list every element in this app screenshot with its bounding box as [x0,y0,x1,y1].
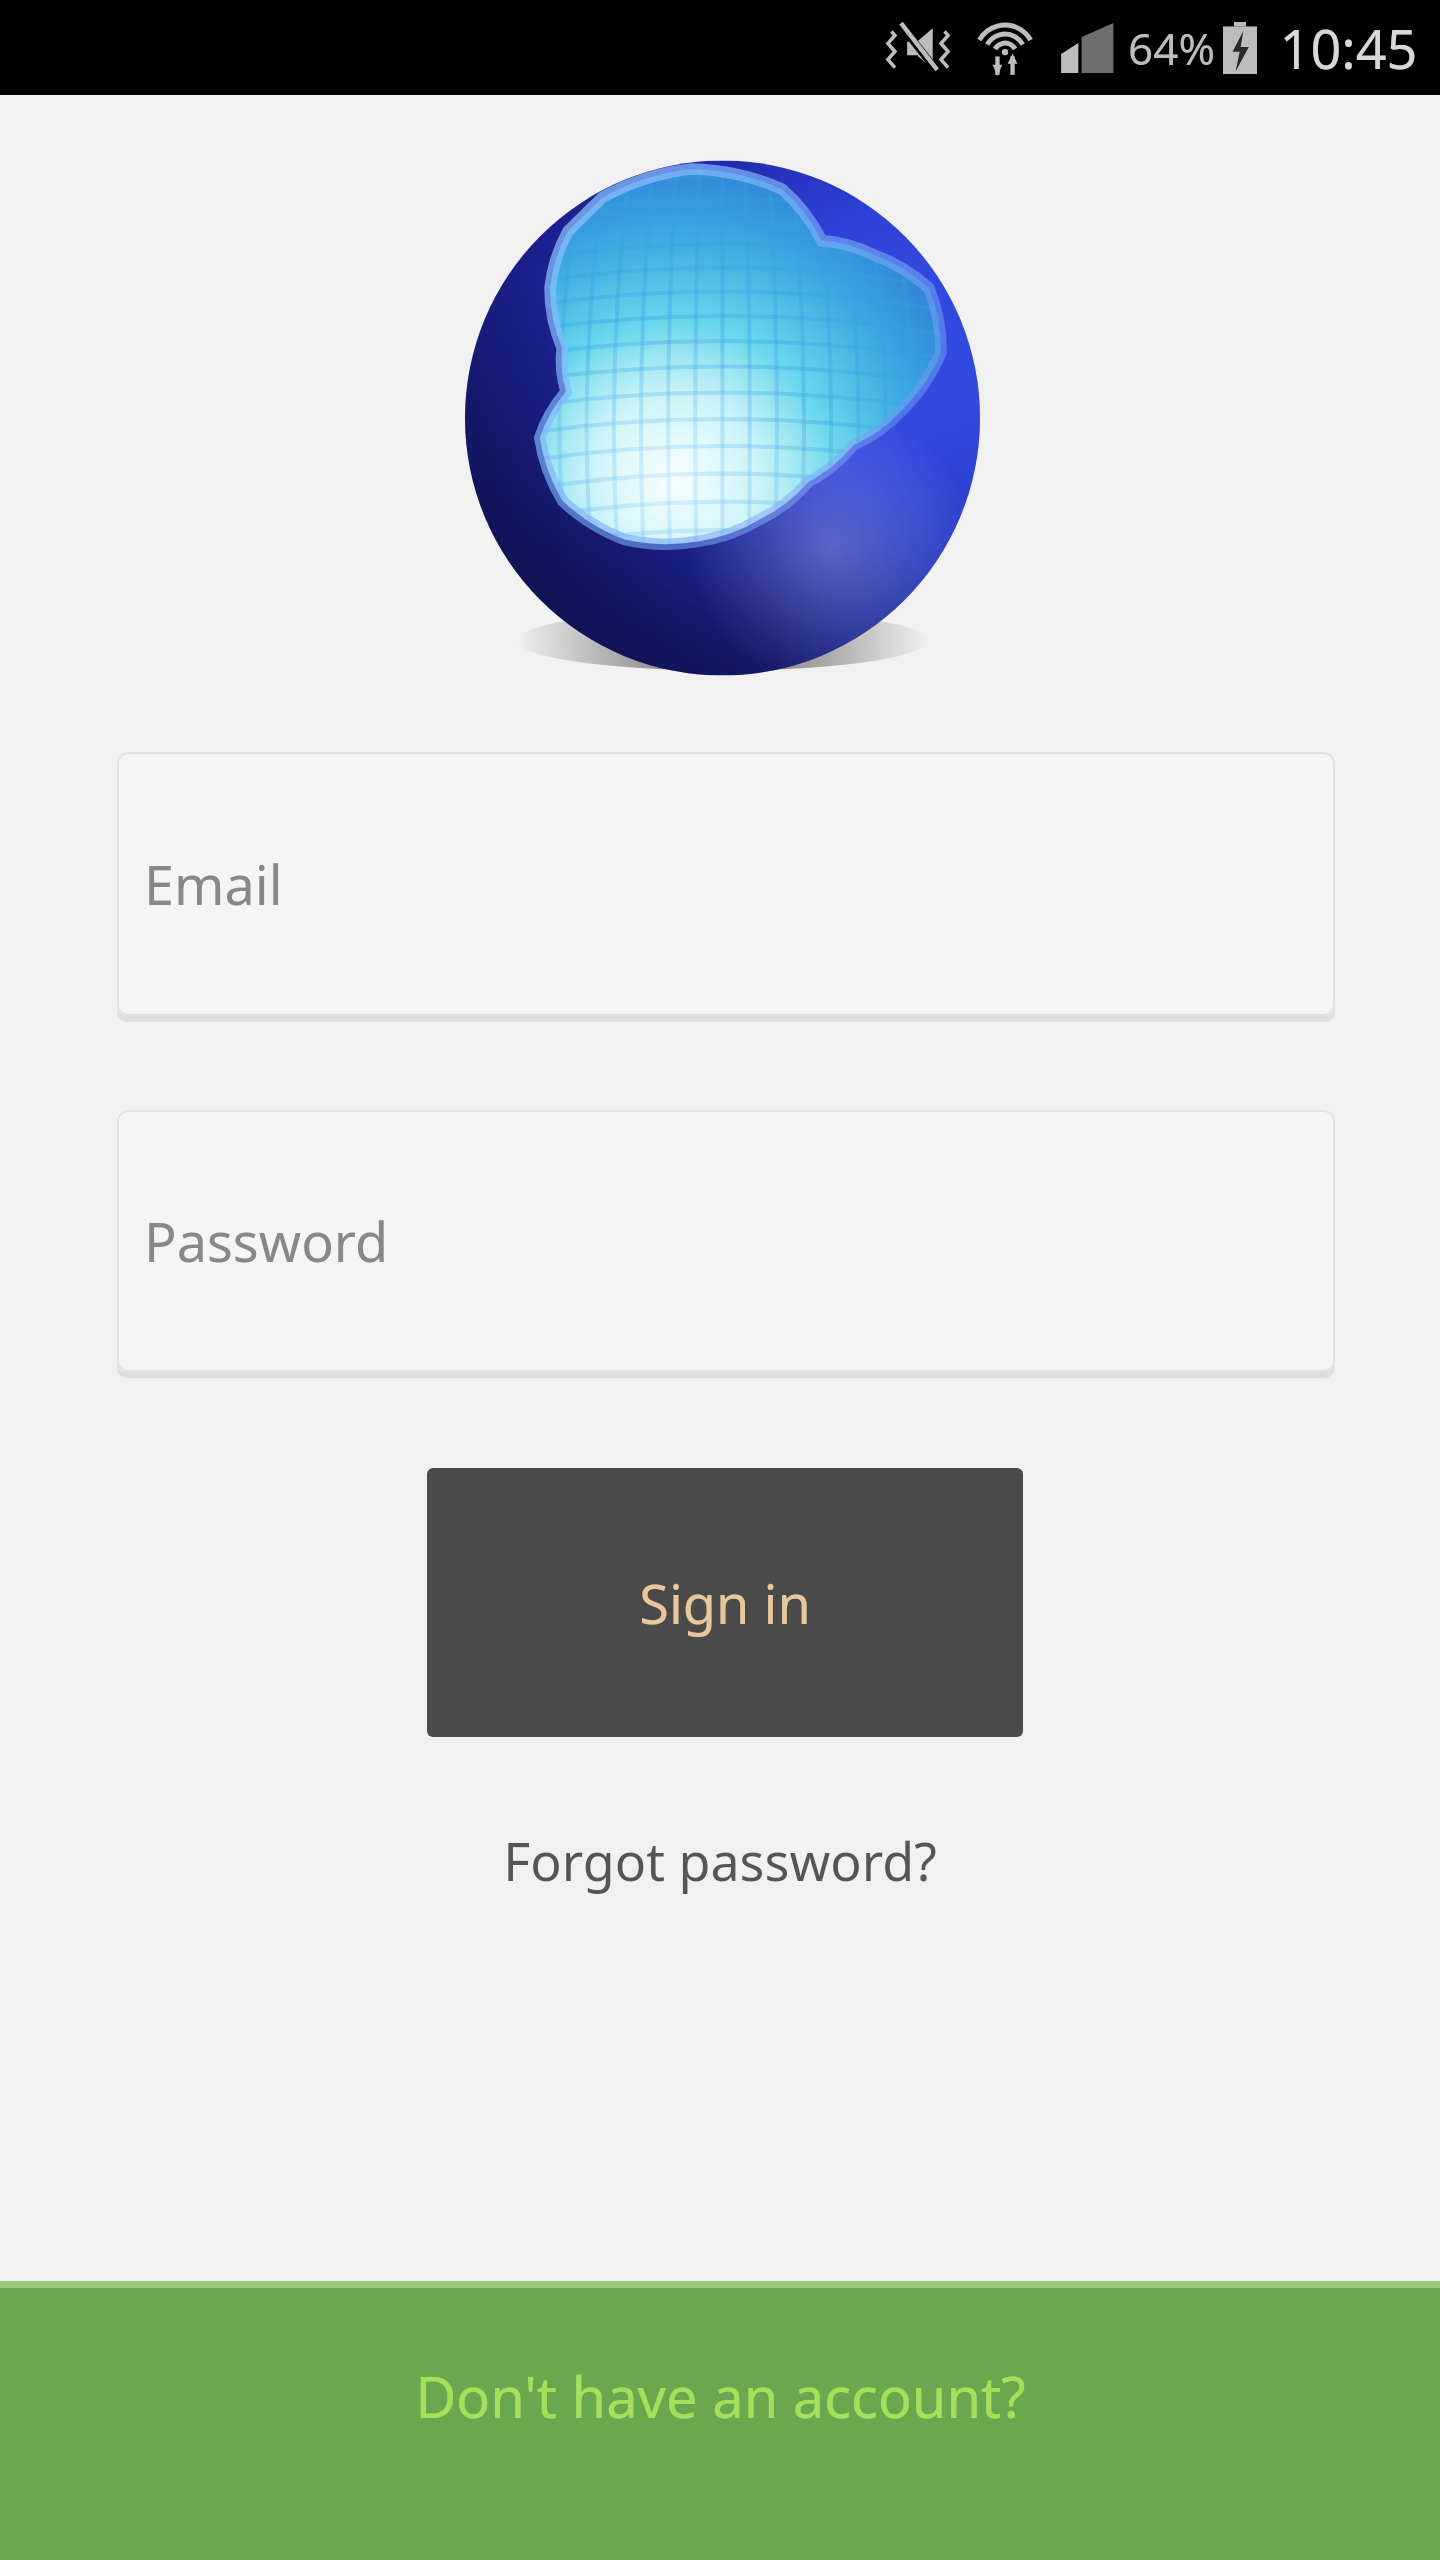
staticText: 64% [1128,18,1215,78]
staticText: Password [144,1204,389,1278]
button[interactable]: Email [117,752,1335,1016]
button[interactable]: Forgot password? [0,1795,1440,1925]
staticText: Forgot password? [503,1825,937,1896]
staticText: Email [144,847,283,921]
staticText: Don't have an account? [415,2358,1026,2434]
staticText: Sign in [639,1566,811,1640]
button[interactable]: Sign in [427,1468,1023,1737]
staticText: 10:45 [1279,11,1418,85]
button[interactable]: Don't have an account? [0,2281,1440,2560]
button[interactable]: Password [117,1110,1335,1372]
